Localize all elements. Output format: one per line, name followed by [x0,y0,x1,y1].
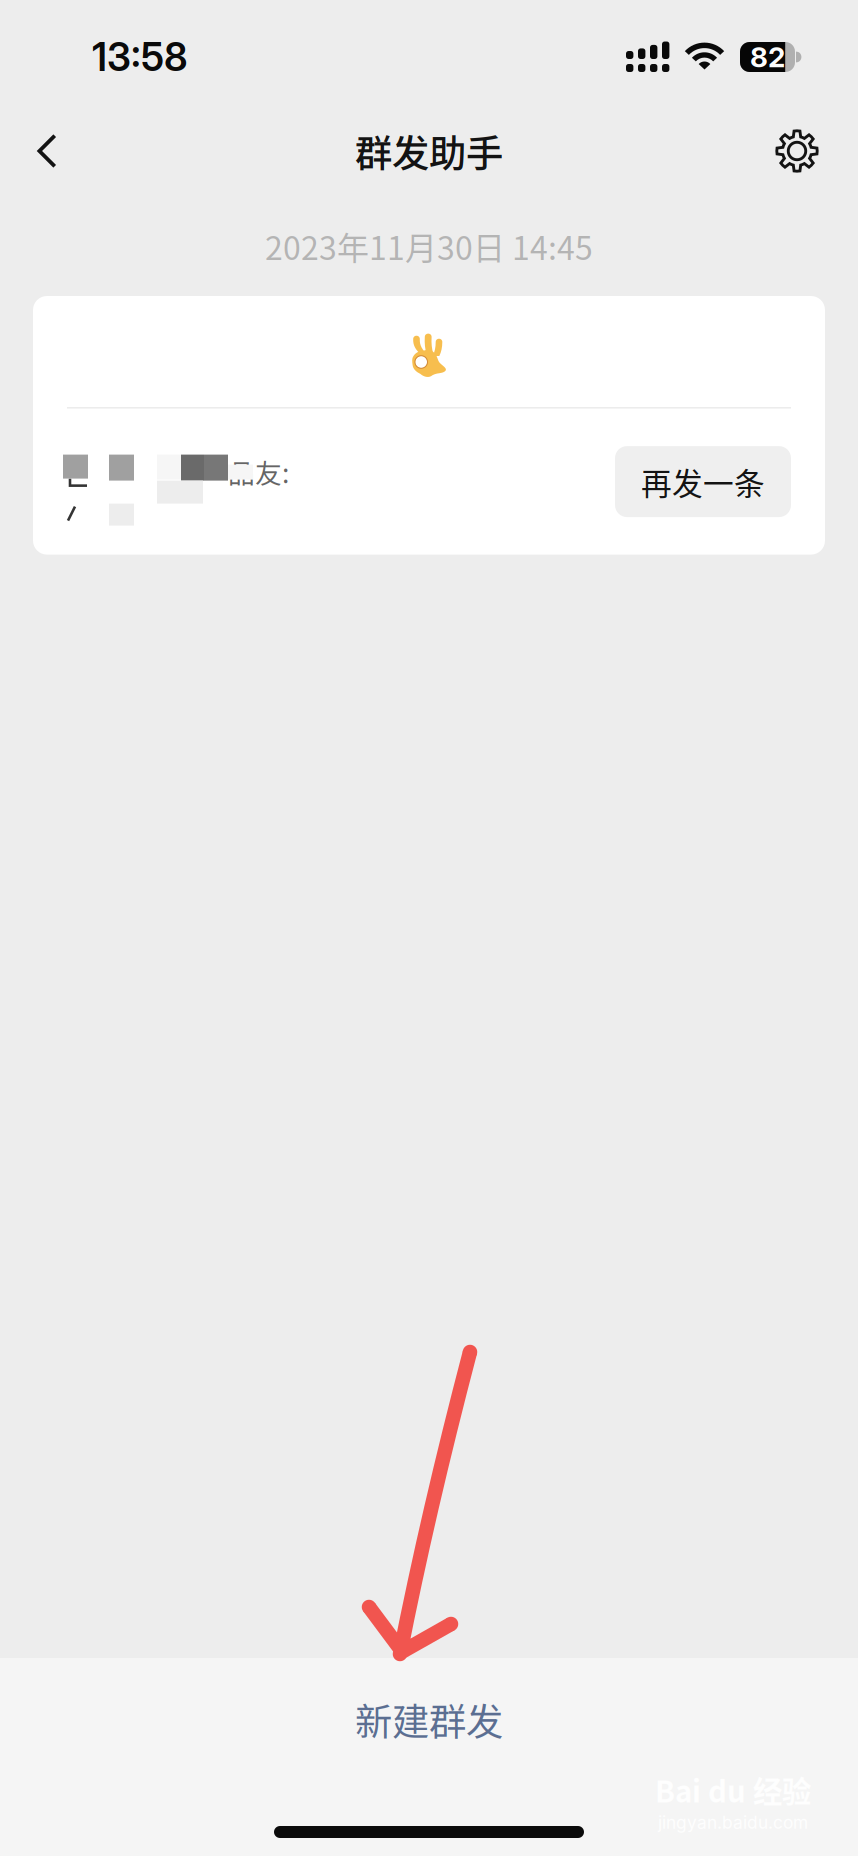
button[interactable]: 返回 [10,111,84,191]
staticText: 2023年11月30日 14:45 [265,223,593,269]
staticText: Bai du 经验 [655,1769,811,1811]
staticText: 82 [750,40,785,74]
staticText: 新建群发 [355,1692,503,1747]
button[interactable]: 设置 [760,111,834,191]
staticText: 13:58 [92,34,188,80]
staticText: 群发助手 [355,124,503,178]
staticText: 再发一条 [641,459,765,504]
button[interactable]: 新建群发 [0,1658,858,1781]
button[interactable]: 再发一条 [615,446,791,517]
staticText: 品友: [228,452,289,491]
